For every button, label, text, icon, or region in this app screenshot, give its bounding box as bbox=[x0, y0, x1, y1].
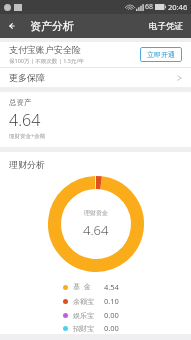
staticText: 基 金 bbox=[73, 282, 91, 292]
button[interactable]: 基 金 bbox=[0, 280, 191, 294]
staticText: 电子凭证 bbox=[149, 21, 183, 32]
button[interactable]: 娱乐宝 bbox=[0, 308, 191, 322]
staticText: 0.00 bbox=[104, 310, 128, 320]
button[interactable]: 总资产 bbox=[0, 92, 191, 147]
staticText: 理财资金+余额 bbox=[9, 132, 46, 140]
staticText: 保100万 | 不限次数 | 1.5元/年 bbox=[9, 57, 85, 65]
staticText: 招财宝 bbox=[73, 324, 94, 333]
staticText: 理财资金 bbox=[84, 209, 108, 217]
button[interactable]: 立即开通 bbox=[140, 47, 182, 62]
staticText: 4.64 bbox=[9, 109, 41, 131]
staticText: 0.00 bbox=[104, 323, 128, 333]
staticText: 4.54 bbox=[104, 282, 128, 292]
staticText: 总资产 bbox=[9, 98, 32, 107]
staticText: 立即开通 bbox=[147, 50, 175, 59]
staticText: 娱乐宝 bbox=[73, 311, 94, 320]
staticText: 支付宝账户安全险 bbox=[9, 44, 81, 55]
staticText: 68 bbox=[145, 2, 154, 12]
staticText: 4.64 bbox=[83, 221, 109, 239]
staticText: 余额宝 bbox=[73, 297, 94, 306]
button[interactable]: 余额宝 bbox=[0, 294, 191, 308]
button[interactable]: Back bbox=[0, 14, 26, 38]
button[interactable]: 支付宝账户安全险 bbox=[0, 42, 191, 67]
staticText: 20:46 bbox=[168, 2, 188, 12]
button[interactable]: 招财宝 bbox=[0, 322, 191, 334]
staticText: 理财分析 bbox=[9, 159, 45, 170]
button[interactable]: 更多保障 bbox=[0, 68, 191, 87]
staticText: 资产分析 bbox=[30, 19, 74, 33]
staticText: 0.10 bbox=[104, 296, 128, 306]
staticText: 更多保障 bbox=[9, 72, 177, 83]
button[interactable]: 电子凭证 bbox=[141, 14, 191, 38]
